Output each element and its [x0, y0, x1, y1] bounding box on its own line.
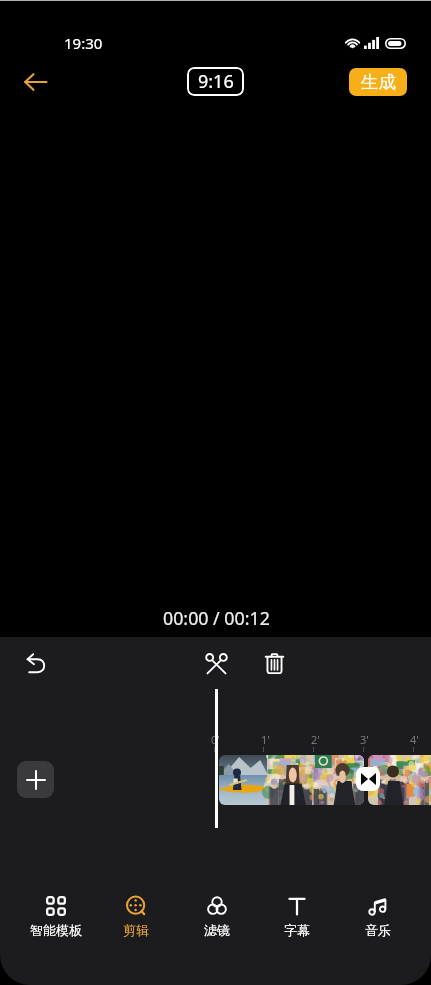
button[interactable]	[368, 755, 431, 805]
button[interactable]	[219, 755, 364, 805]
staticText: 3'	[360, 732, 369, 747]
button[interactable]: Split	[196, 643, 236, 683]
button[interactable]: 字幕	[258, 889, 336, 945]
staticText: 生成	[361, 71, 396, 93]
button[interactable]: 智能模板	[17, 889, 95, 945]
button[interactable]: Transition	[356, 767, 380, 791]
staticText: 9:16	[198, 69, 234, 94]
button[interactable]: 生成	[349, 68, 407, 96]
staticText: 19:30	[64, 33, 103, 53]
button[interactable]: Undo	[16, 643, 56, 683]
staticText: 00:00 / 00:12	[163, 606, 270, 630]
button[interactable]: Back	[13, 60, 57, 104]
button[interactable]: 剪辑	[97, 889, 175, 945]
staticText: 2'	[311, 732, 320, 747]
button[interactable]: 音乐	[339, 889, 417, 945]
staticText: 剪辑	[123, 922, 149, 938]
button[interactable]: Add clip	[17, 761, 54, 798]
staticText: 4'	[410, 732, 419, 747]
button[interactable]: Delete	[254, 643, 294, 683]
staticText: 0'	[211, 732, 220, 747]
button[interactable]: 9:16	[187, 67, 244, 96]
staticText: 字幕	[284, 922, 310, 938]
staticText: 音乐	[365, 922, 391, 938]
staticText: 滤镜	[204, 922, 230, 938]
button[interactable]: 滤镜	[178, 889, 256, 945]
staticText: 1'	[261, 732, 270, 747]
staticText: 智能模板	[30, 922, 82, 938]
